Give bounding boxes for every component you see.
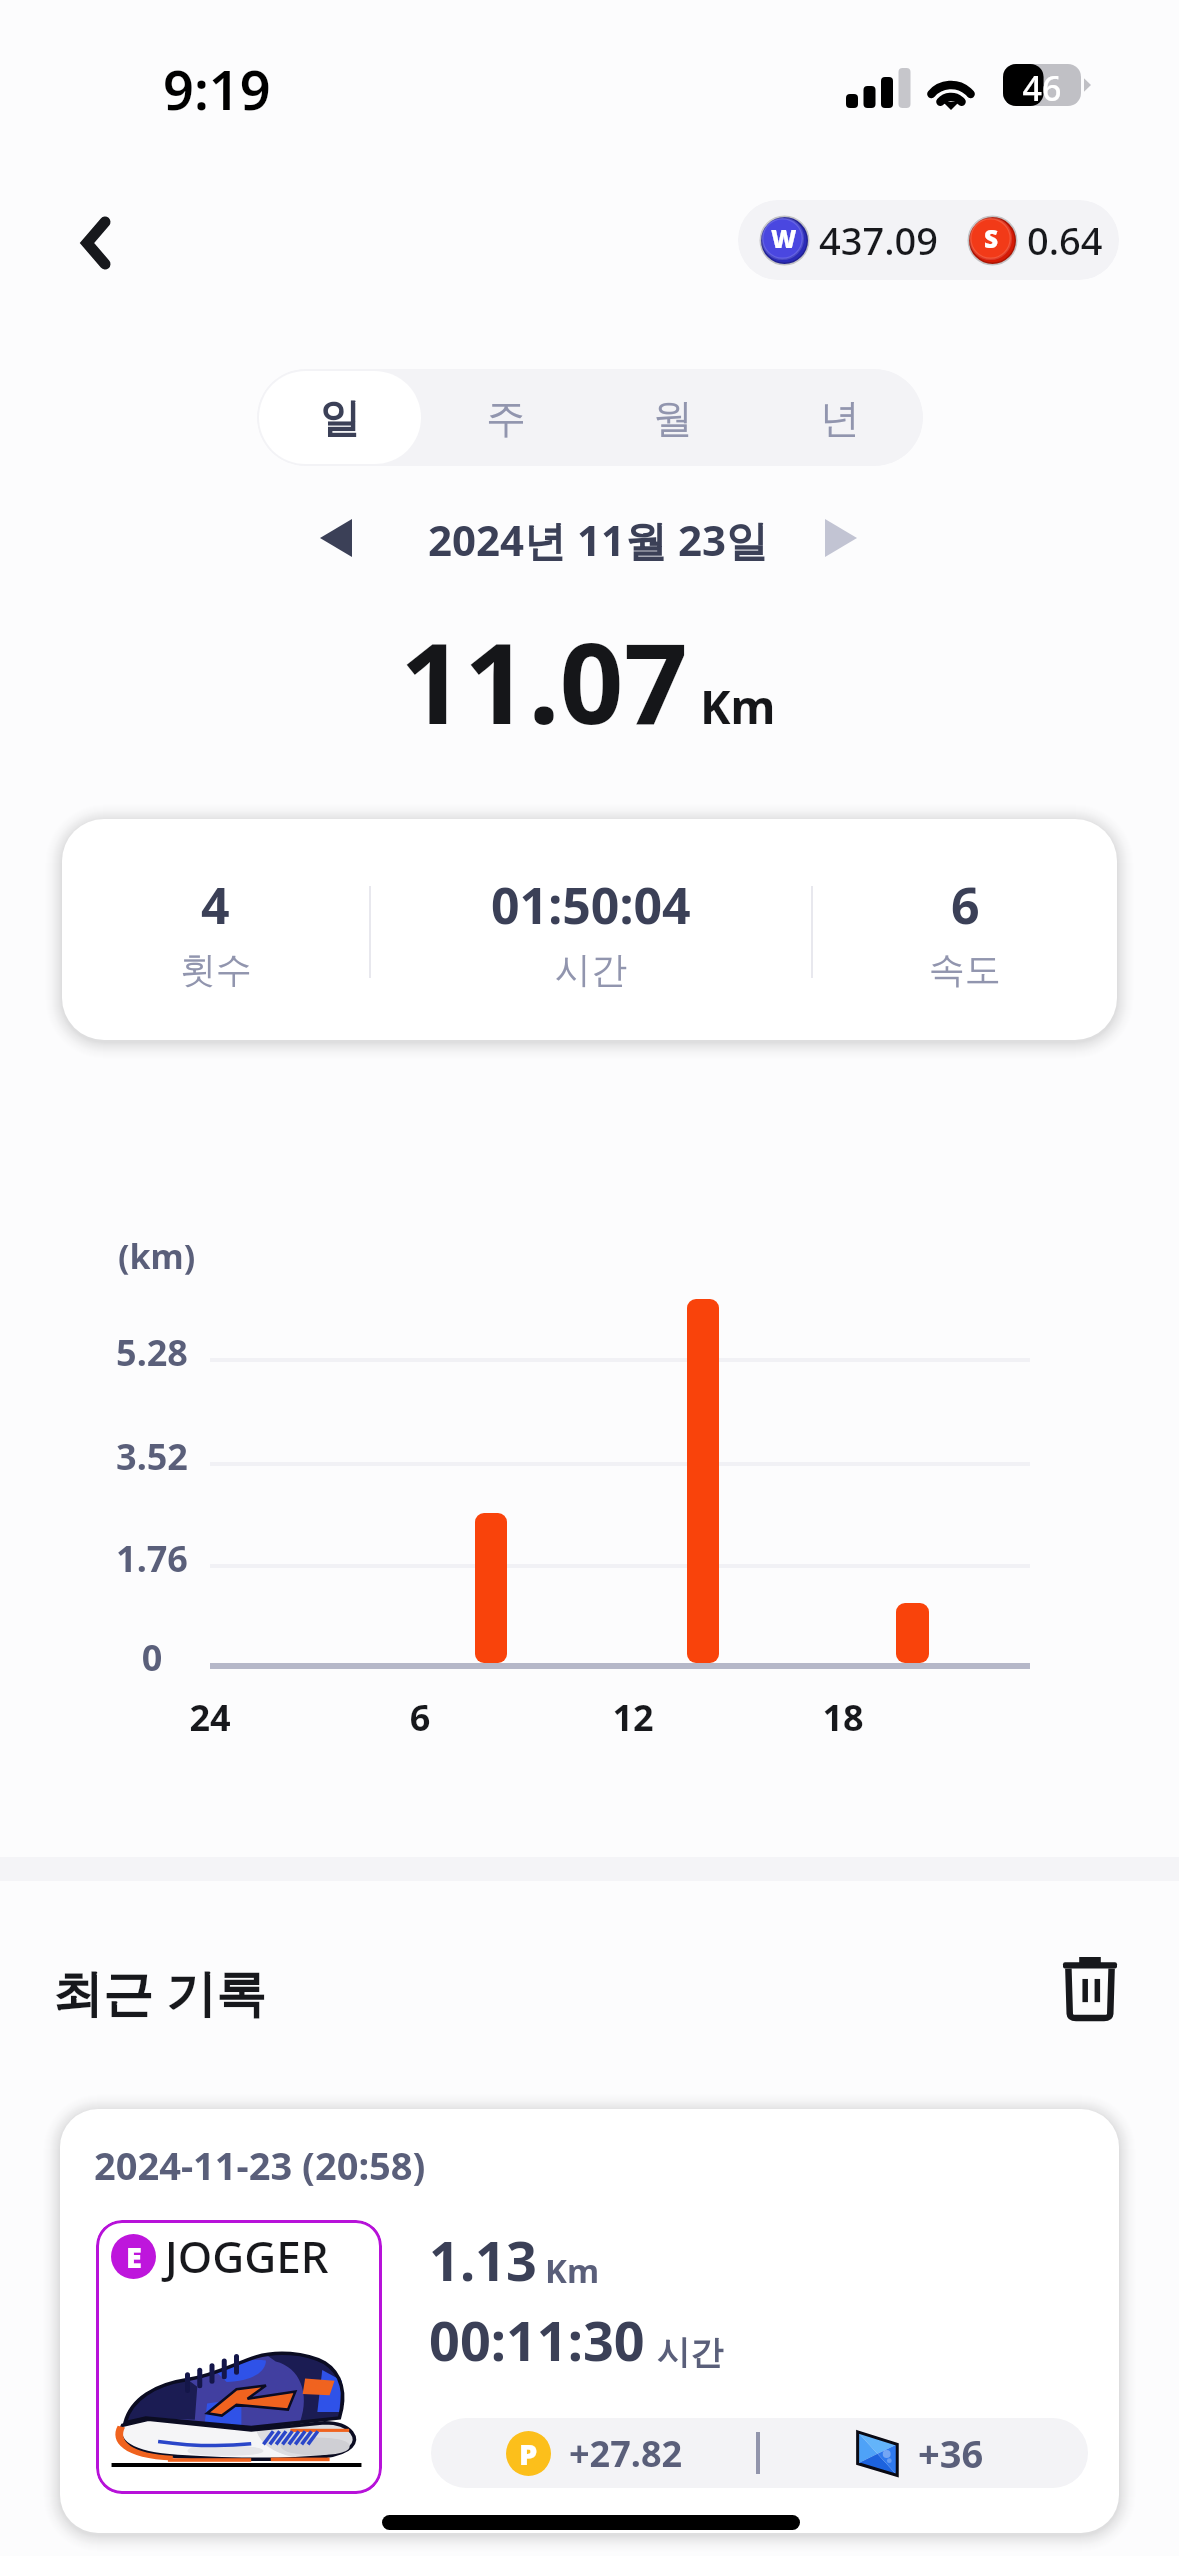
staticText: 46	[1003, 65, 1081, 111]
staticText: 5.28	[52, 1328, 252, 1377]
staticText: 2024년 11월 23일	[428, 511, 769, 568]
staticText: 시간	[555, 947, 627, 992]
staticText: 11.07	[400, 604, 688, 757]
staticText: P	[519, 2434, 538, 2473]
staticText: +27.82	[569, 2429, 683, 2478]
staticText: 속도	[929, 947, 1001, 992]
staticText: 437.09	[819, 214, 939, 266]
button[interactable]: 01:50:04	[371, 871, 811, 992]
button[interactable]: 4	[62, 871, 369, 992]
button[interactable]: 일	[259, 371, 421, 464]
button[interactable]: Back	[53, 200, 139, 286]
staticText: 6	[350, 1693, 490, 1742]
button[interactable]: Delete records	[1048, 1945, 1132, 2029]
staticText: Km	[700, 675, 776, 738]
button[interactable]: Next day	[805, 498, 877, 578]
button[interactable]: 6	[813, 871, 1117, 992]
staticText: 4	[201, 871, 230, 939]
button[interactable]: 주	[425, 371, 587, 464]
staticText: 9:19	[163, 52, 271, 126]
staticText: 12	[563, 1693, 703, 1742]
button[interactable]: 년	[758, 371, 921, 464]
staticText: E	[126, 2237, 142, 2276]
staticText: W	[771, 222, 797, 255]
staticText: 1.76	[52, 1534, 252, 1583]
button[interactable]: P	[431, 2418, 1088, 2488]
button[interactable]: 월	[591, 371, 754, 464]
staticText: 시간	[657, 2332, 723, 2374]
staticText: (km)	[118, 1233, 196, 1279]
staticText: 24	[140, 1693, 280, 1742]
staticText: 2024-11-23 (20:58)	[94, 2139, 426, 2191]
button[interactable]: W	[738, 200, 1119, 280]
staticText: JOGGER	[165, 2226, 329, 2286]
staticText: 01:50:04	[491, 871, 691, 939]
staticText: 00:11:30	[429, 2303, 645, 2377]
staticText: 3.52	[52, 1432, 252, 1481]
staticText: S	[984, 222, 999, 255]
staticText: 주	[486, 393, 526, 443]
staticText: 6	[951, 871, 980, 939]
staticText: 월	[653, 393, 693, 443]
staticText: 횟수	[180, 947, 252, 992]
button[interactable]: Previous day	[300, 498, 372, 578]
staticText: 일	[320, 393, 360, 443]
staticText: +36	[918, 2427, 984, 2479]
staticText: 0.64	[1027, 214, 1103, 266]
staticText: 0	[52, 1633, 252, 1682]
staticText: 최근 기록	[53, 1958, 266, 2026]
staticText: Km	[545, 2248, 600, 2293]
staticText: 년	[820, 393, 860, 443]
staticText: 1.13	[429, 2223, 537, 2297]
staticText: 18	[773, 1693, 913, 1742]
button[interactable]: 2024-11-23 (20:58)	[60, 2109, 1119, 2533]
